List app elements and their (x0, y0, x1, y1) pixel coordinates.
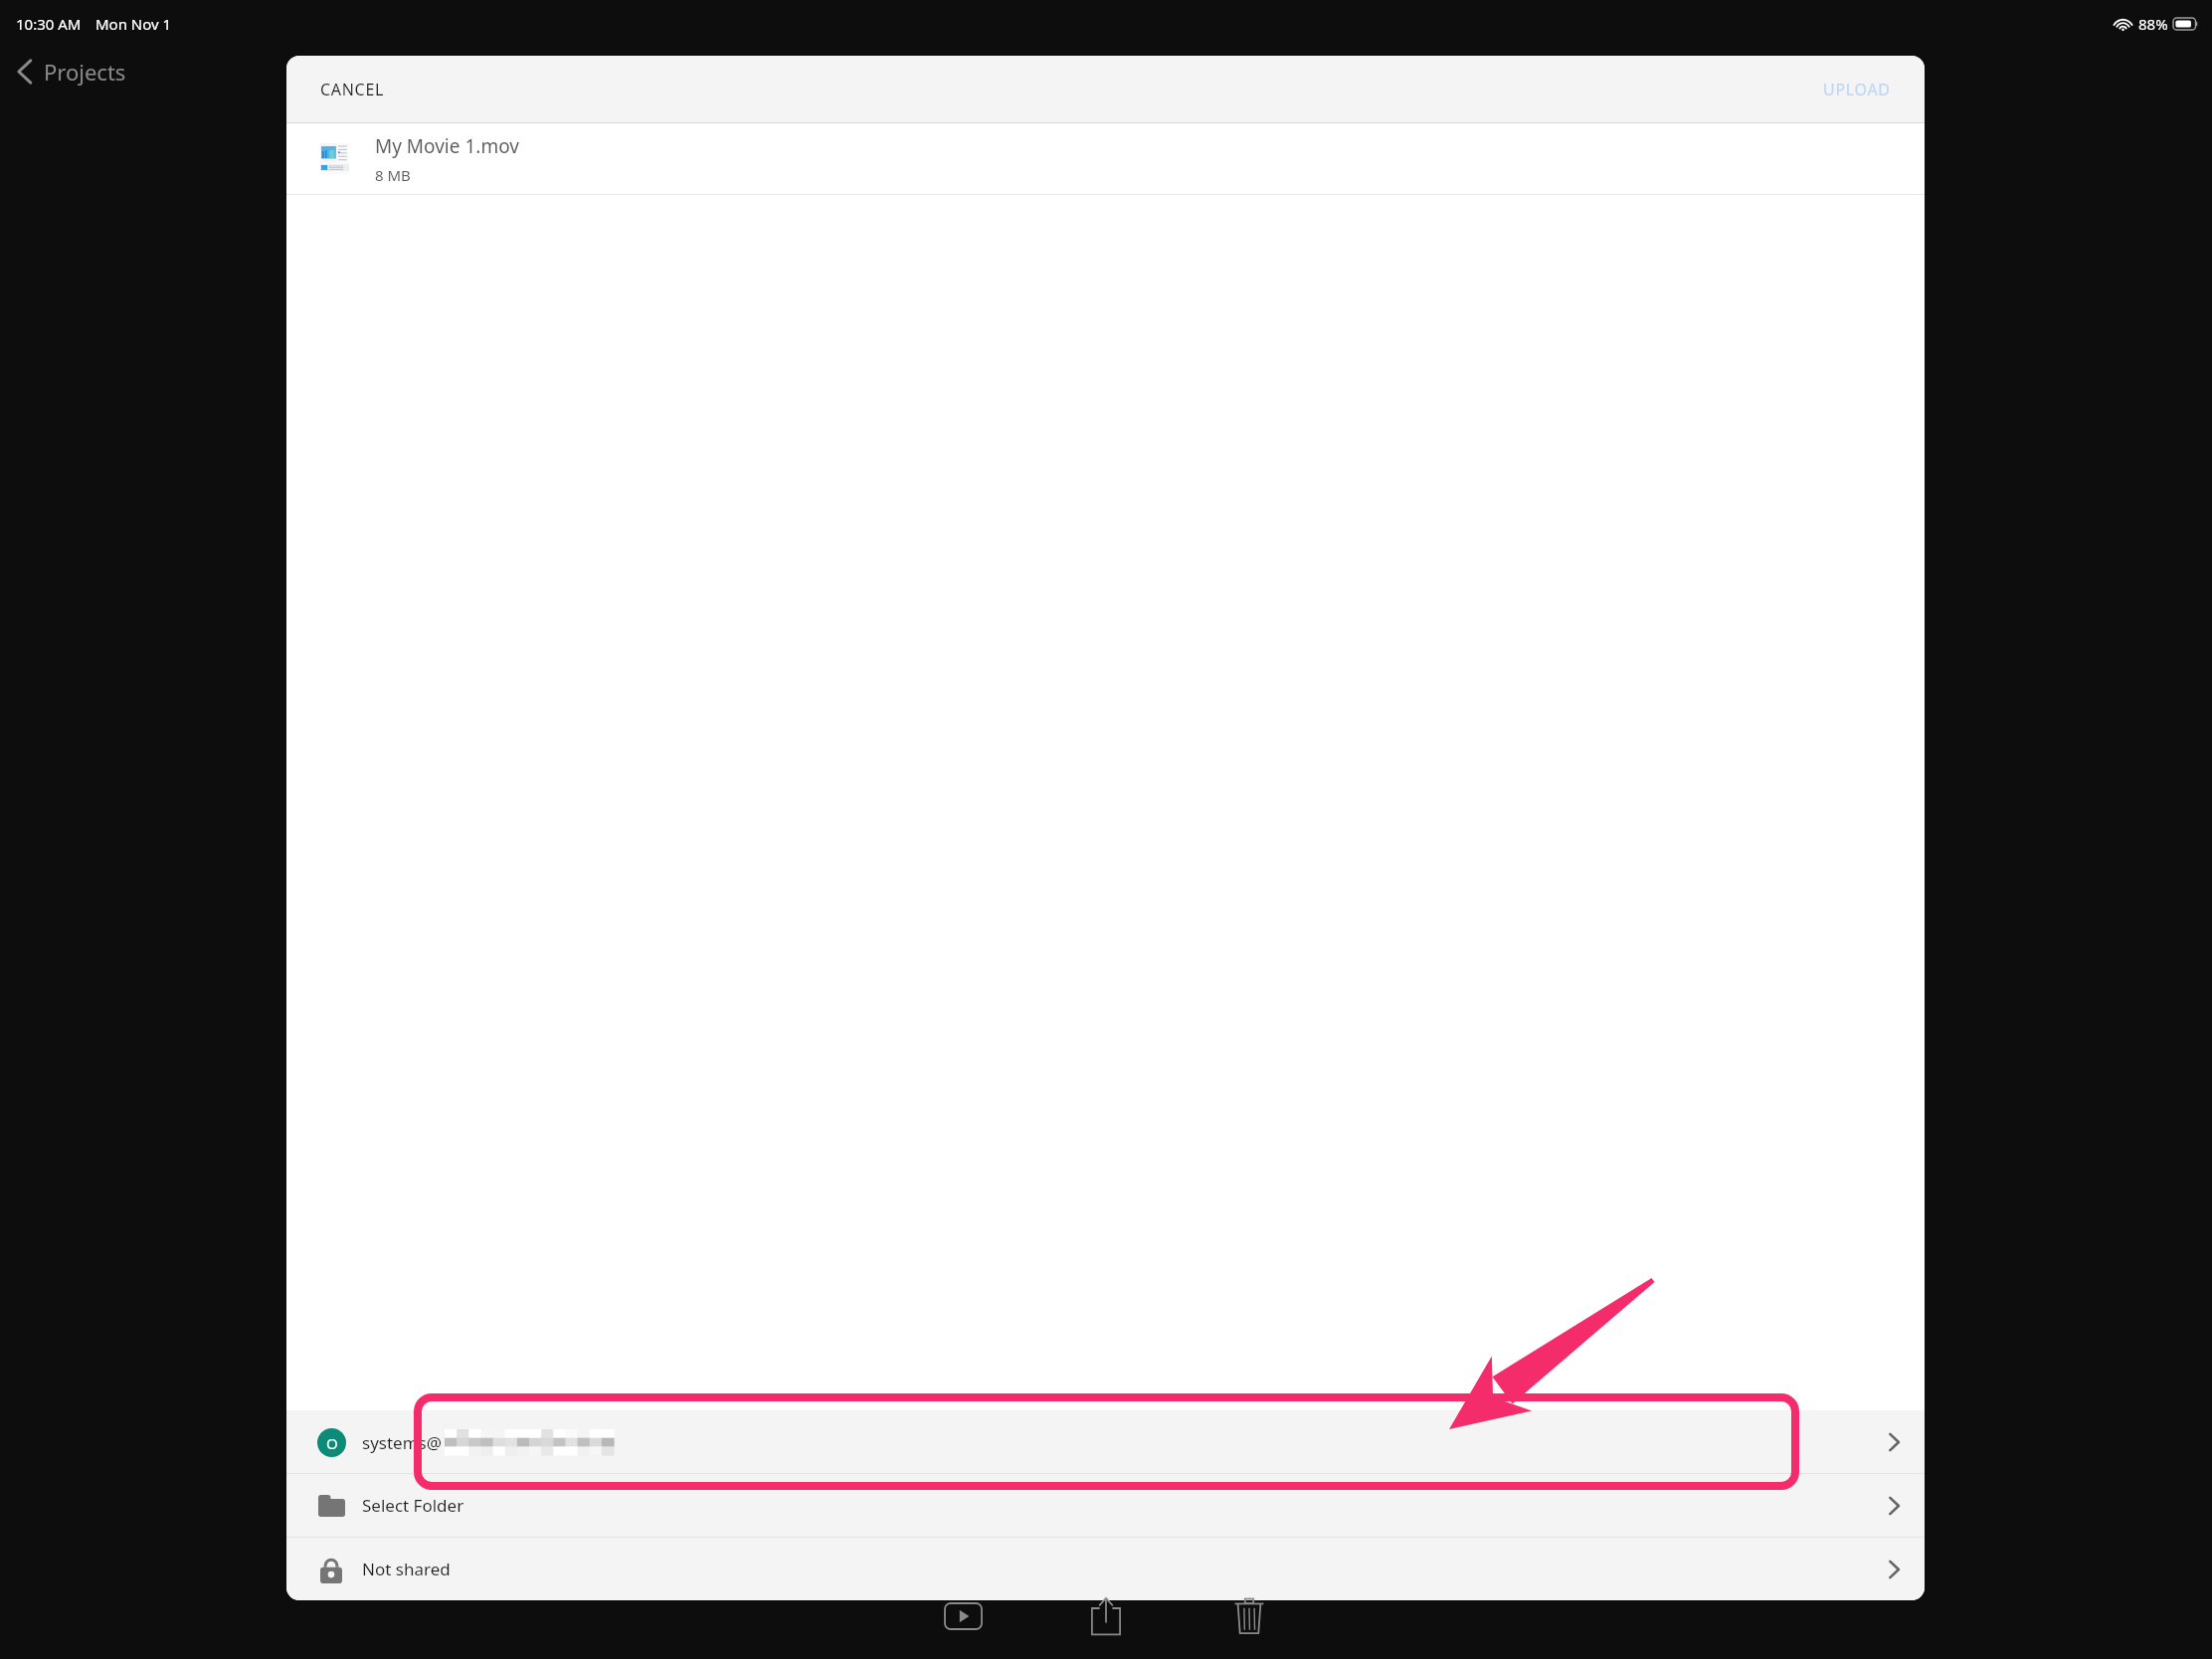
staticText: Select Folder (362, 1494, 464, 1517)
staticText: 10:30 AM (16, 14, 82, 34)
staticText: systems@ (362, 1431, 443, 1454)
staticText: My Movie 1.mov (375, 133, 519, 159)
button[interactable]: My Movie 1.mov (286, 123, 1925, 194)
button[interactable]: Select Folder (286, 1474, 1925, 1537)
button[interactable]: UPLOAD (1789, 56, 1925, 122)
staticText: Projects (44, 57, 126, 87)
staticText: Mon Nov 1 (95, 14, 172, 34)
button[interactable]: Play (927, 1587, 999, 1645)
staticText: O (326, 1433, 338, 1453)
button[interactable]: Not shared (286, 1538, 1925, 1600)
staticText: 8 MB (375, 165, 411, 185)
button[interactable]: Delete (1213, 1587, 1285, 1645)
button[interactable]: Projects (10, 48, 132, 95)
button[interactable]: CANCEL (286, 56, 419, 122)
staticText: Not shared (362, 1558, 451, 1580)
staticText: CANCEL (320, 79, 385, 100)
button[interactable]: Share (1070, 1587, 1142, 1645)
button[interactable]: O (286, 1410, 1925, 1473)
staticText: 88% (2138, 14, 2168, 34)
staticText: UPLOAD (1823, 79, 1891, 100)
